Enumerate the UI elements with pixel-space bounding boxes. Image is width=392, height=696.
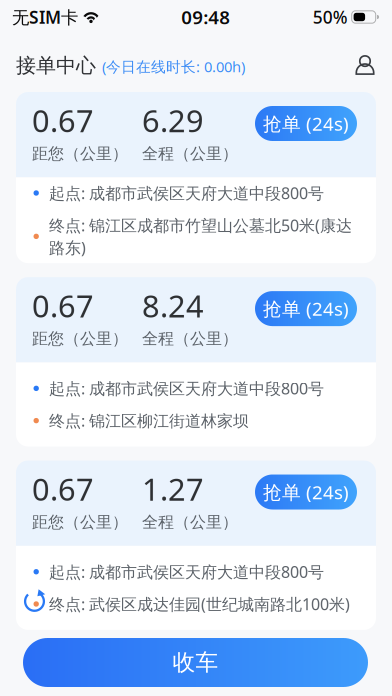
staticText: 09:48 xyxy=(181,5,230,29)
staticText: 全程（公里） xyxy=(142,512,238,532)
staticText: 距您（公里） xyxy=(32,329,128,348)
staticText: 距您（公里） xyxy=(32,144,128,163)
button[interactable]: 抢单 (24s) xyxy=(255,291,357,326)
staticText: 抢单 (24s) xyxy=(263,480,349,504)
staticText: 接单中心 xyxy=(16,53,96,78)
staticText: 8.24 xyxy=(142,285,204,326)
staticText: 终点: 锦江区成都市竹望山公墓北50米(康达路东) xyxy=(49,215,352,258)
button[interactable]: 收车 xyxy=(23,638,368,687)
staticText: 全程（公里） xyxy=(142,329,238,348)
staticText: 起点: 成都市武侯区天府大道中段800号 xyxy=(49,182,324,204)
staticText: 全程（公里） xyxy=(142,144,238,163)
staticText: 0.67 xyxy=(32,468,94,509)
staticText: 1.27 xyxy=(142,468,204,509)
staticText: 起点: 成都市武侯区天府大道中段800号 xyxy=(49,378,324,399)
staticText: (今日在线时长: 0.00h) xyxy=(102,57,245,76)
staticText: 起点: 成都市武侯区天府大道中段800号 xyxy=(49,561,324,582)
staticText: 无SIM卡 xyxy=(12,5,78,28)
staticText: 抢单 (24s) xyxy=(263,296,349,321)
staticText: 距您（公里） xyxy=(32,512,128,532)
staticText: 0.67 xyxy=(32,285,94,326)
button[interactable]: 个人中心 xyxy=(346,46,384,84)
staticText: 6.29 xyxy=(142,100,204,141)
staticText: 终点: 武侯区成达佳园(世纪城南路北100米) xyxy=(49,593,350,615)
button[interactable]: 抢单 (24s) xyxy=(255,106,357,141)
staticText: 终点: 锦江区柳江街道林家坝 xyxy=(49,410,249,431)
staticText: 收车 xyxy=(172,649,218,676)
staticText: 50% xyxy=(313,5,348,28)
button[interactable]: 抢单 (24s) xyxy=(255,474,357,509)
staticText: 抢单 (24s) xyxy=(263,111,349,136)
staticText: 0.67 xyxy=(32,100,94,141)
